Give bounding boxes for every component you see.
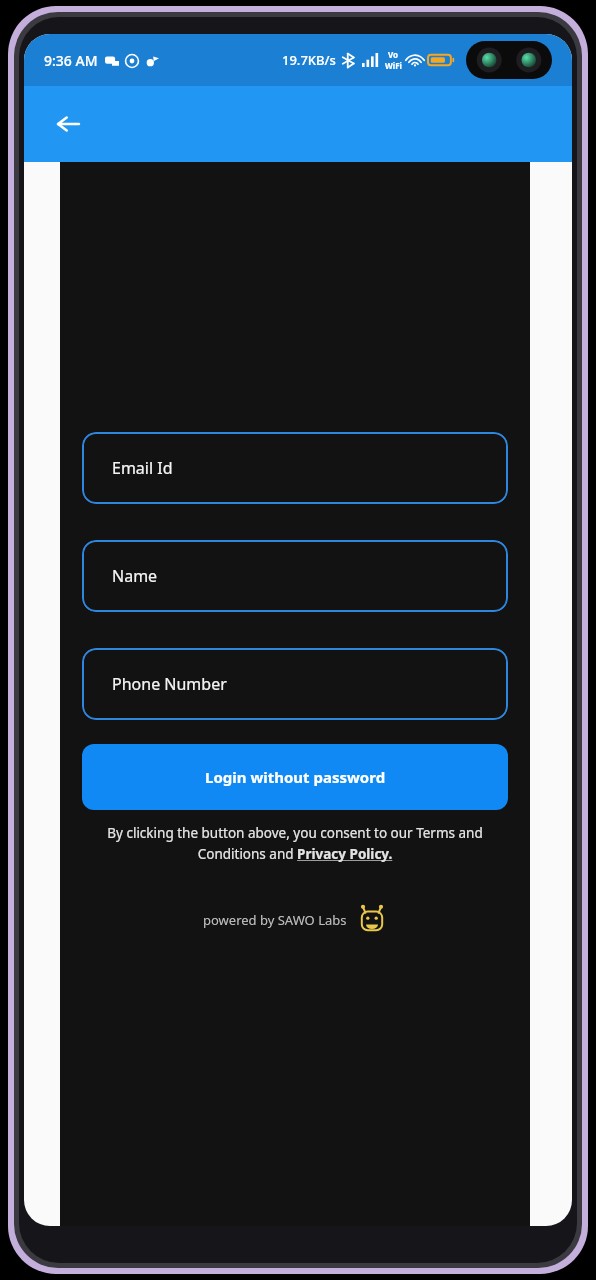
staticText: Vo <box>388 49 399 60</box>
staticText: Name <box>112 565 158 587</box>
staticText: WiFi <box>385 60 402 71</box>
button[interactable]: Back <box>46 102 90 146</box>
staticText: By clicking the button above, you consen… <box>76 824 514 863</box>
button[interactable]: Name <box>82 540 508 612</box>
staticText: 19.7KB/s <box>282 51 336 69</box>
button[interactable]: Phone Number <box>82 648 508 720</box>
staticText: 9:36 AM <box>44 51 98 70</box>
button[interactable]: Email Id <box>82 432 508 504</box>
staticText: powered by SAWO Labs <box>203 911 347 929</box>
staticText: Phone Number <box>112 673 227 695</box>
staticText: Email Id <box>112 457 173 479</box>
staticText: Login without password <box>205 767 386 787</box>
button[interactable]: Login without password <box>82 744 508 810</box>
